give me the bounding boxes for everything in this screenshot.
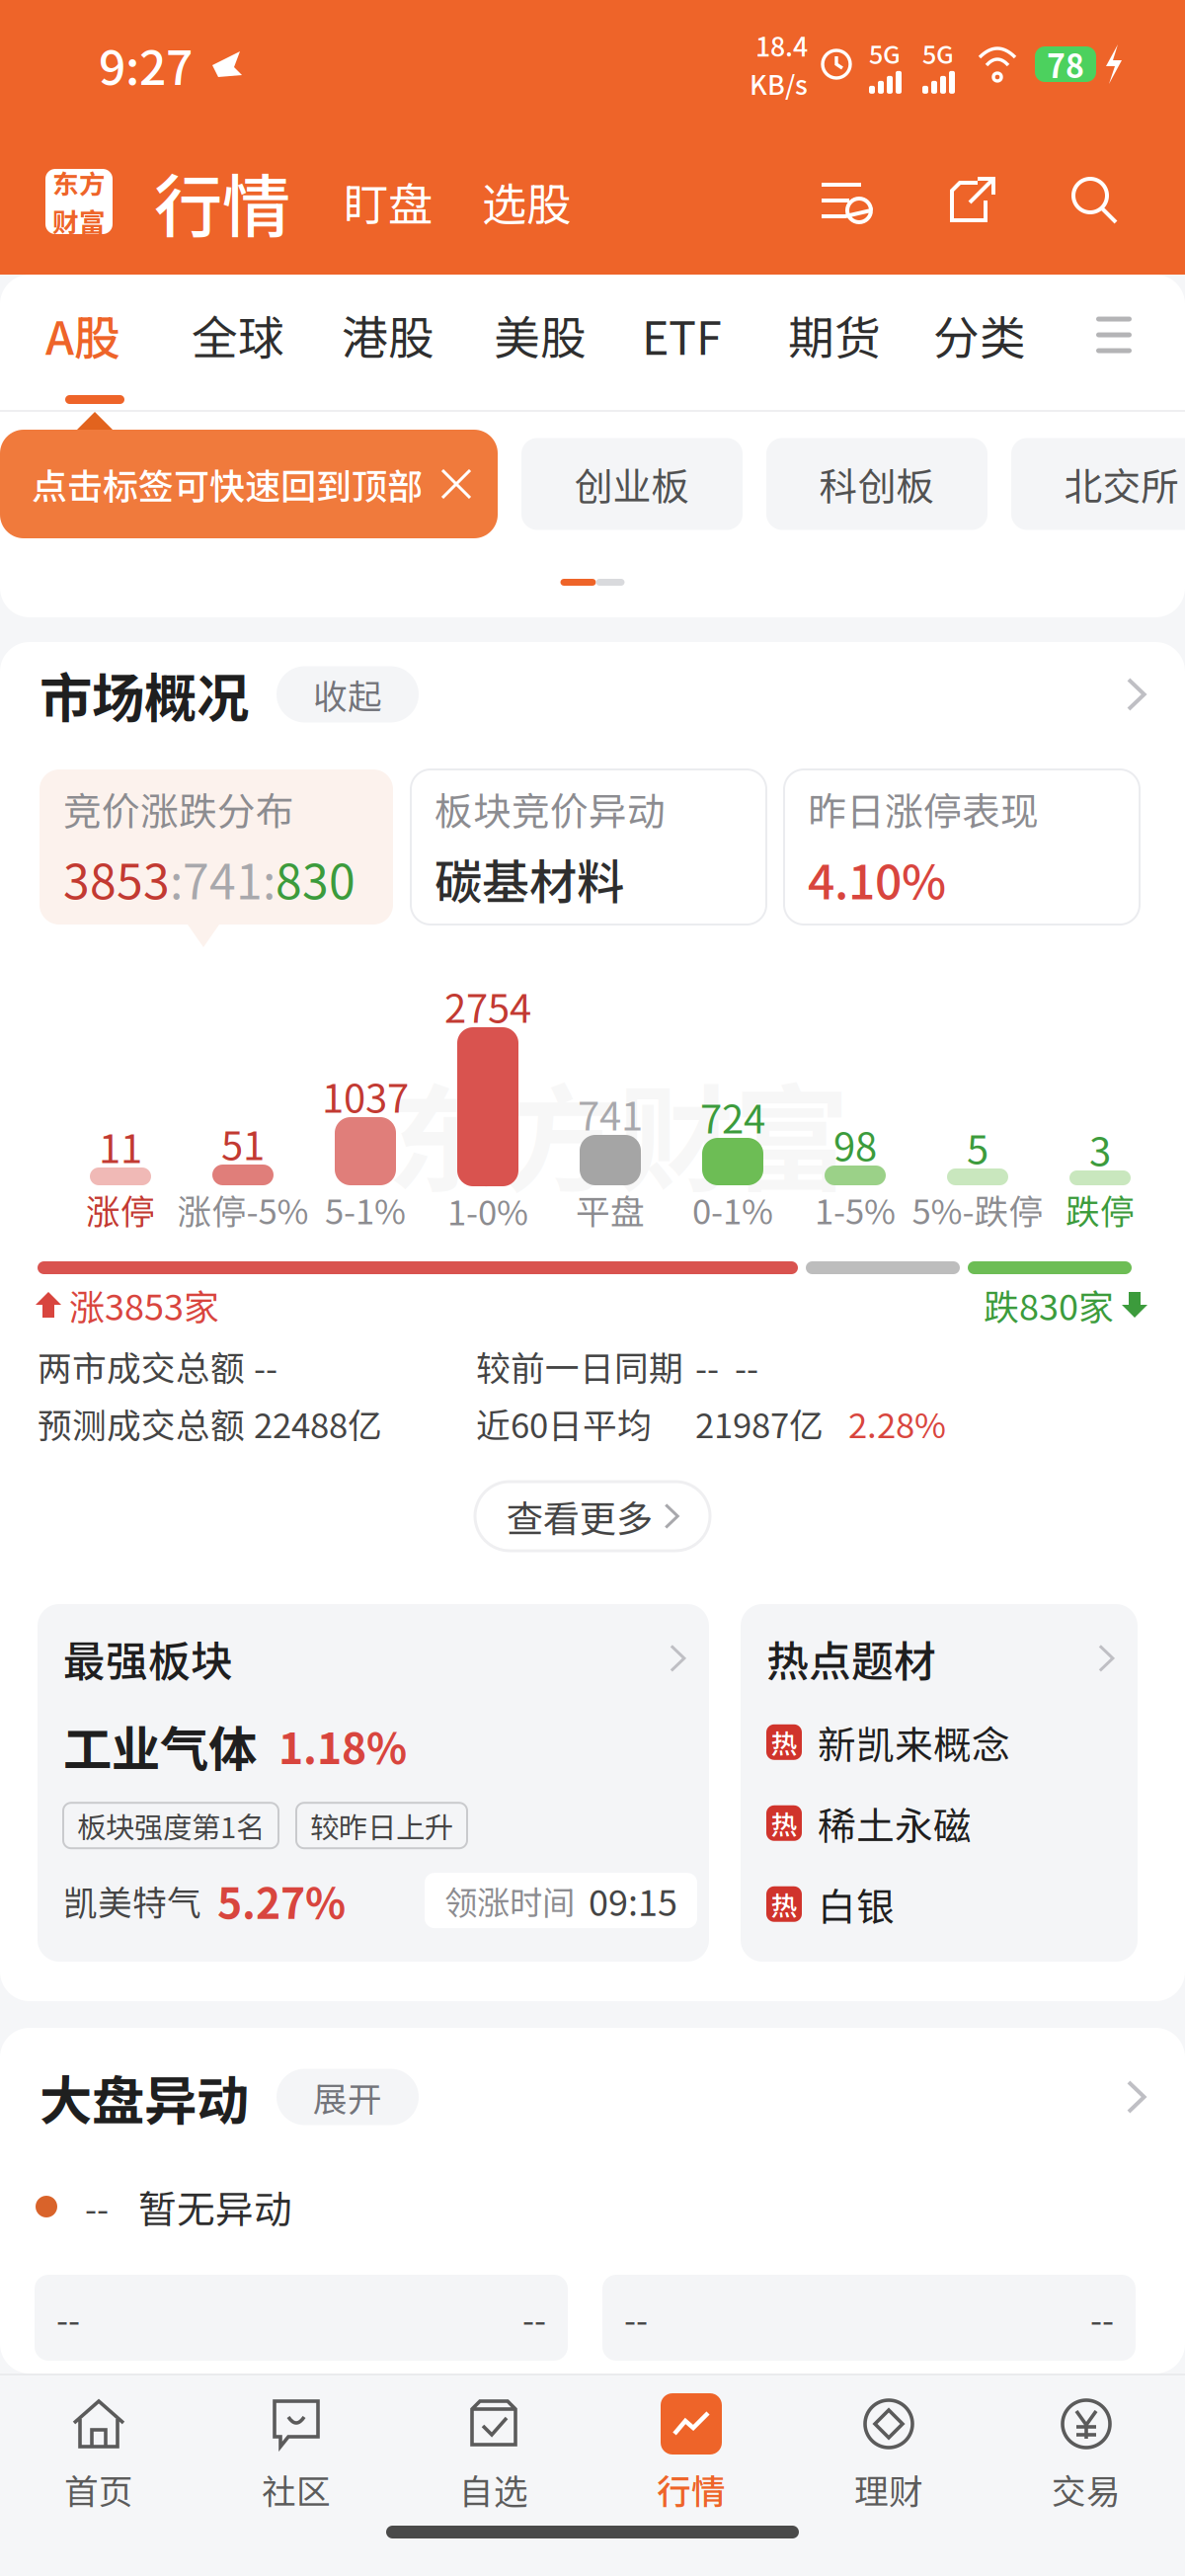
staticText: 5-1%: [325, 1185, 406, 1234]
staticText: 新凯来概念: [818, 1715, 1010, 1770]
button[interactable]: 热: [766, 1876, 1138, 1932]
button[interactable]: 分类: [933, 301, 1026, 368]
staticText: 724: [700, 1087, 765, 1145]
button[interactable]: 创业板: [521, 438, 743, 530]
staticText: --: [624, 2293, 648, 2343]
staticText: 2754: [444, 977, 531, 1034]
staticText: 热: [771, 1885, 797, 1923]
staticText: 22488亿: [254, 1399, 382, 1448]
staticText: 5G: [922, 35, 954, 71]
staticText: 暂无异动: [138, 2179, 292, 2234]
button[interactable]: 展开: [276, 2069, 419, 2125]
staticText: 跌830家: [984, 1279, 1114, 1330]
staticText: 741: [578, 1085, 643, 1142]
staticText: 涨停: [86, 1185, 155, 1234]
staticText: 创业板: [574, 456, 690, 512]
staticText: 凯美特气: [63, 1876, 201, 1925]
staticText: 港股: [342, 301, 434, 368]
staticText: 大盘异动: [39, 2059, 249, 2135]
staticText: 78: [1047, 41, 1084, 87]
staticText: 昨日涨停表现: [808, 781, 1039, 836]
button[interactable]: ETF: [642, 301, 722, 368]
staticText: 科创板: [819, 456, 935, 512]
button[interactable]: A股: [45, 301, 120, 368]
button[interactable]: Settings: [820, 177, 877, 226]
staticText: 首页: [64, 2464, 133, 2514]
staticText: 东方: [52, 163, 106, 201]
button[interactable]: Search: [1068, 176, 1120, 227]
staticText: 盯盘: [344, 169, 433, 234]
staticText: 工业气体: [63, 1711, 257, 1781]
staticText: 行情: [154, 152, 290, 251]
button[interactable]: 收起: [276, 666, 419, 723]
staticText: 涨停-5%: [177, 1185, 309, 1234]
staticText: 美股: [494, 301, 587, 368]
staticText: 5G: [869, 35, 901, 71]
staticText: --: [1090, 2293, 1114, 2343]
staticText: --: [254, 1341, 277, 1391]
staticText: 板块竞价异动: [434, 781, 666, 836]
staticText: A股: [45, 301, 120, 368]
button[interactable]: Share: [948, 177, 999, 226]
button[interactable]: 首页: [0, 2375, 197, 2520]
staticText: -- --: [695, 1341, 758, 1391]
staticText: 5%-跌停: [912, 1185, 1043, 1234]
staticText: 98: [833, 1115, 877, 1172]
staticText: 自选: [459, 2464, 528, 2514]
staticText: 741: [183, 844, 263, 913]
staticText: 期货: [788, 301, 881, 368]
button[interactable]: 查看更多: [475, 1482, 710, 1551]
staticText: --: [522, 2293, 546, 2343]
staticText: 9:27: [99, 30, 193, 98]
staticText: :: [263, 844, 276, 913]
button[interactable]: 全球: [192, 301, 284, 368]
staticText: 社区: [262, 2464, 331, 2514]
staticText: 稀土永磁: [818, 1795, 972, 1851]
staticText: 市场概况: [39, 656, 249, 733]
staticText: 分类: [933, 301, 1026, 368]
staticText: 4.10%: [808, 844, 946, 913]
staticText: 较昨日上升: [310, 1805, 453, 1847]
staticText: 最强板块: [63, 1628, 233, 1689]
staticText: 东方财富: [387, 1048, 849, 1216]
staticText: 两市成交总额: [38, 1341, 245, 1391]
button[interactable]: 理财: [790, 2375, 987, 2520]
staticText: --: [85, 2182, 109, 2231]
staticText: 白银: [818, 1876, 895, 1932]
staticText: 较前一日同期: [476, 1341, 683, 1391]
staticText: 1037: [322, 1067, 409, 1124]
staticText: 830: [276, 844, 355, 913]
staticText: 交易: [1052, 2464, 1121, 2514]
button[interactable]: 美股: [494, 301, 587, 368]
button[interactable]: 北交所: [1011, 438, 1185, 530]
staticText: 3: [1089, 1120, 1111, 1177]
staticText: :: [170, 844, 183, 913]
staticText: 板块强度第1名: [77, 1805, 265, 1847]
button[interactable]: 热: [766, 1715, 1138, 1770]
button[interactable]: 行情: [592, 2375, 790, 2520]
button[interactable]: 热: [766, 1795, 1138, 1851]
button[interactable]: 港股: [342, 301, 434, 368]
button[interactable]: 科创板: [766, 438, 987, 530]
staticText: 平盘: [576, 1185, 645, 1234]
button[interactable]: 自选: [395, 2375, 592, 2520]
staticText: 0-1%: [692, 1185, 773, 1234]
button[interactable]: 点击标签可快速回到顶部: [0, 430, 498, 538]
staticText: 跌停: [1066, 1185, 1135, 1234]
staticText: 51: [221, 1114, 265, 1171]
button[interactable]: 交易: [987, 2375, 1185, 2520]
button[interactable]: More: [1094, 317, 1134, 353]
staticText: KB/s: [750, 64, 808, 102]
staticText: 1-0%: [447, 1186, 528, 1235]
staticText: 收起: [313, 670, 382, 719]
button[interactable]: 期货: [788, 301, 881, 368]
staticText: 行情: [657, 2464, 726, 2514]
staticText: 点击标签可快速回到顶部: [32, 458, 423, 510]
staticText: 涨3853家: [69, 1279, 219, 1330]
staticText: 预测成交总额: [38, 1399, 245, 1448]
staticText: 热点题材: [766, 1628, 936, 1689]
staticText: 18.4: [755, 26, 808, 64]
staticText: 09:15: [589, 1875, 677, 1926]
button[interactable]: 社区: [197, 2375, 395, 2520]
staticText: ETF: [642, 301, 722, 368]
